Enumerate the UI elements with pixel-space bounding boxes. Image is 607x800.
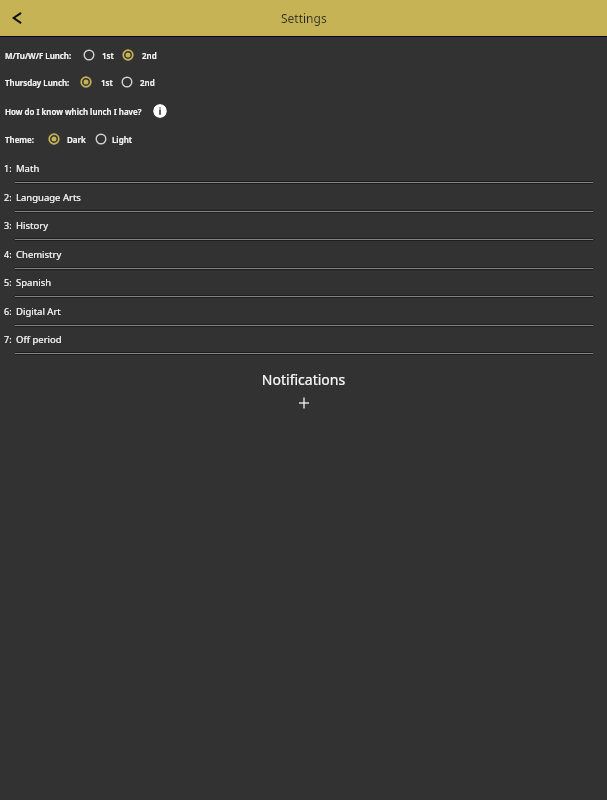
staticText: Light	[112, 134, 132, 145]
button[interactable]: 2nd	[137, 74, 152, 90]
staticText: 3:	[4, 219, 12, 231]
staticText: Digital Art	[16, 305, 61, 318]
button[interactable]: M/Tu/W/F Lunch: 1st	[80, 46, 98, 64]
staticText: Spanish	[16, 276, 52, 289]
staticText: Language Arts	[16, 191, 81, 204]
button[interactable]: 3:	[0, 214, 607, 236]
staticText: Dark	[67, 134, 86, 145]
staticText: Chemistry	[16, 248, 62, 261]
button[interactable]: Back	[0, 1, 34, 35]
staticText: Theme:	[5, 134, 34, 145]
button[interactable]: Add notification	[294, 393, 313, 412]
button[interactable]: Thursday Lunch: 1st	[77, 73, 95, 91]
staticText: Math	[16, 162, 40, 175]
button[interactable]: 2:	[0, 186, 607, 208]
button[interactable]: 6:	[0, 300, 607, 322]
staticText: 2nd	[142, 50, 157, 61]
staticText: History	[16, 219, 48, 232]
staticText: 6:	[4, 305, 12, 317]
button[interactable]: Thursday Lunch: 2nd	[118, 73, 136, 91]
staticText: 7:	[4, 333, 12, 345]
staticText: 1:	[4, 162, 12, 174]
staticText: 5:	[4, 276, 12, 288]
button[interactable]: M/Tu/W/F Lunch: 2nd	[119, 46, 137, 64]
staticText: 1st	[102, 50, 114, 61]
staticText: Notifications	[0, 370, 607, 389]
button[interactable]: Lunch information	[153, 104, 167, 118]
button[interactable]: Dark	[64, 131, 83, 147]
button[interactable]: Light	[109, 131, 129, 147]
staticText: 1st	[101, 77, 113, 88]
staticText: Thursday Lunch:	[5, 77, 70, 88]
staticText: Off period	[16, 333, 62, 346]
button[interactable]: Theme: Light	[92, 130, 110, 148]
staticText: 4:	[4, 248, 12, 260]
staticText: M/Tu/W/F Lunch:	[5, 50, 72, 61]
button[interactable]: 1:	[0, 157, 607, 179]
button[interactable]: Theme: Dark	[45, 130, 63, 148]
button[interactable]: 4:	[0, 243, 607, 265]
staticText: Settings	[281, 10, 327, 26]
button[interactable]: 7:	[0, 328, 607, 350]
staticText: How do I know which lunch I have?	[5, 106, 142, 117]
button[interactable]: 5:	[0, 271, 607, 293]
staticText: 2nd	[140, 77, 155, 88]
button[interactable]: 1st	[99, 47, 111, 63]
button[interactable]: 1st	[98, 74, 110, 90]
staticText: 2:	[4, 191, 12, 203]
button[interactable]: 2nd	[139, 47, 154, 63]
